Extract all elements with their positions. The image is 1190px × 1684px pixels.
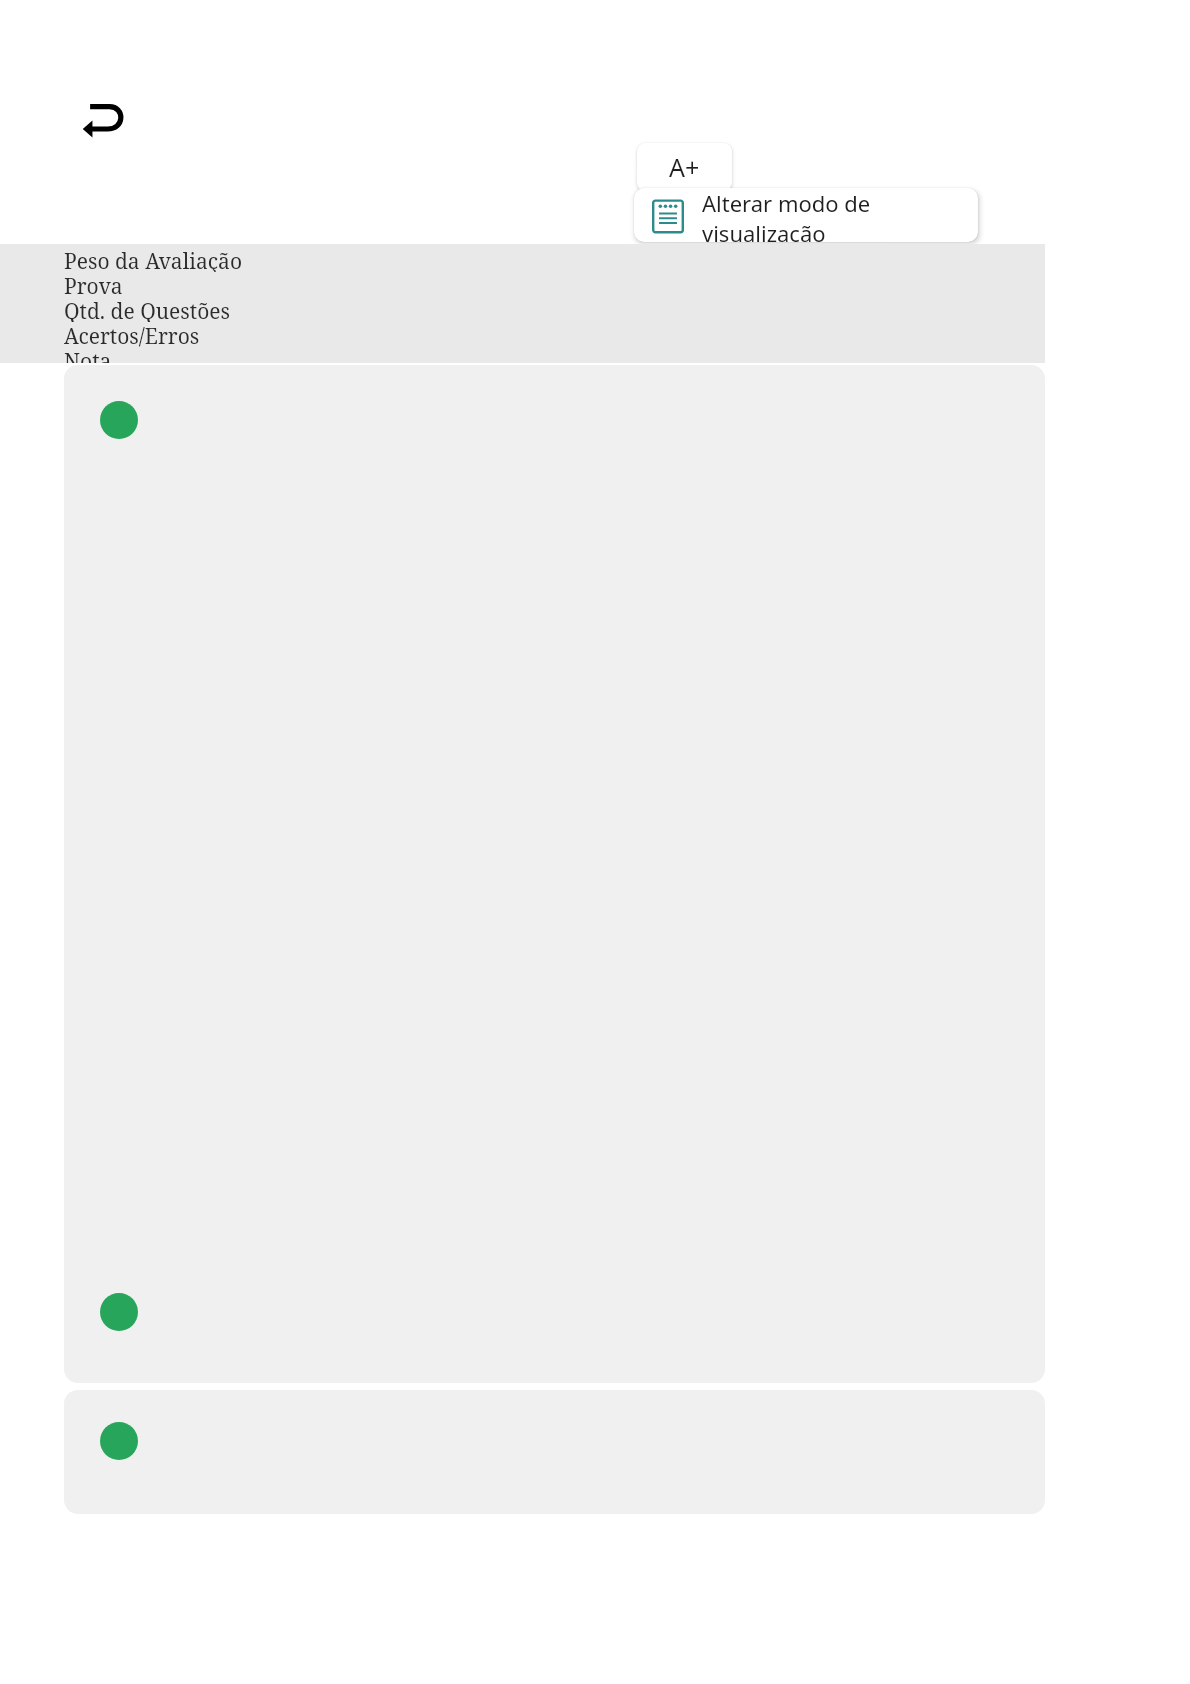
button[interactable] xyxy=(64,1390,1045,1514)
button[interactable]: Alterar modo de visualização xyxy=(634,188,978,242)
staticText: A+ xyxy=(669,150,700,184)
staticText: Prova xyxy=(64,272,123,297)
staticText: Qtd. de Questões xyxy=(64,297,231,322)
staticText: Alterar modo de visualização xyxy=(702,188,960,242)
staticText: Peso da Avaliação xyxy=(64,247,242,272)
button[interactable]: A+ xyxy=(637,143,732,191)
staticText: Acertos/Erros xyxy=(64,322,200,347)
button[interactable] xyxy=(64,365,1045,1383)
staticText: Nota xyxy=(64,347,112,363)
button[interactable]: Voltar xyxy=(72,86,134,148)
